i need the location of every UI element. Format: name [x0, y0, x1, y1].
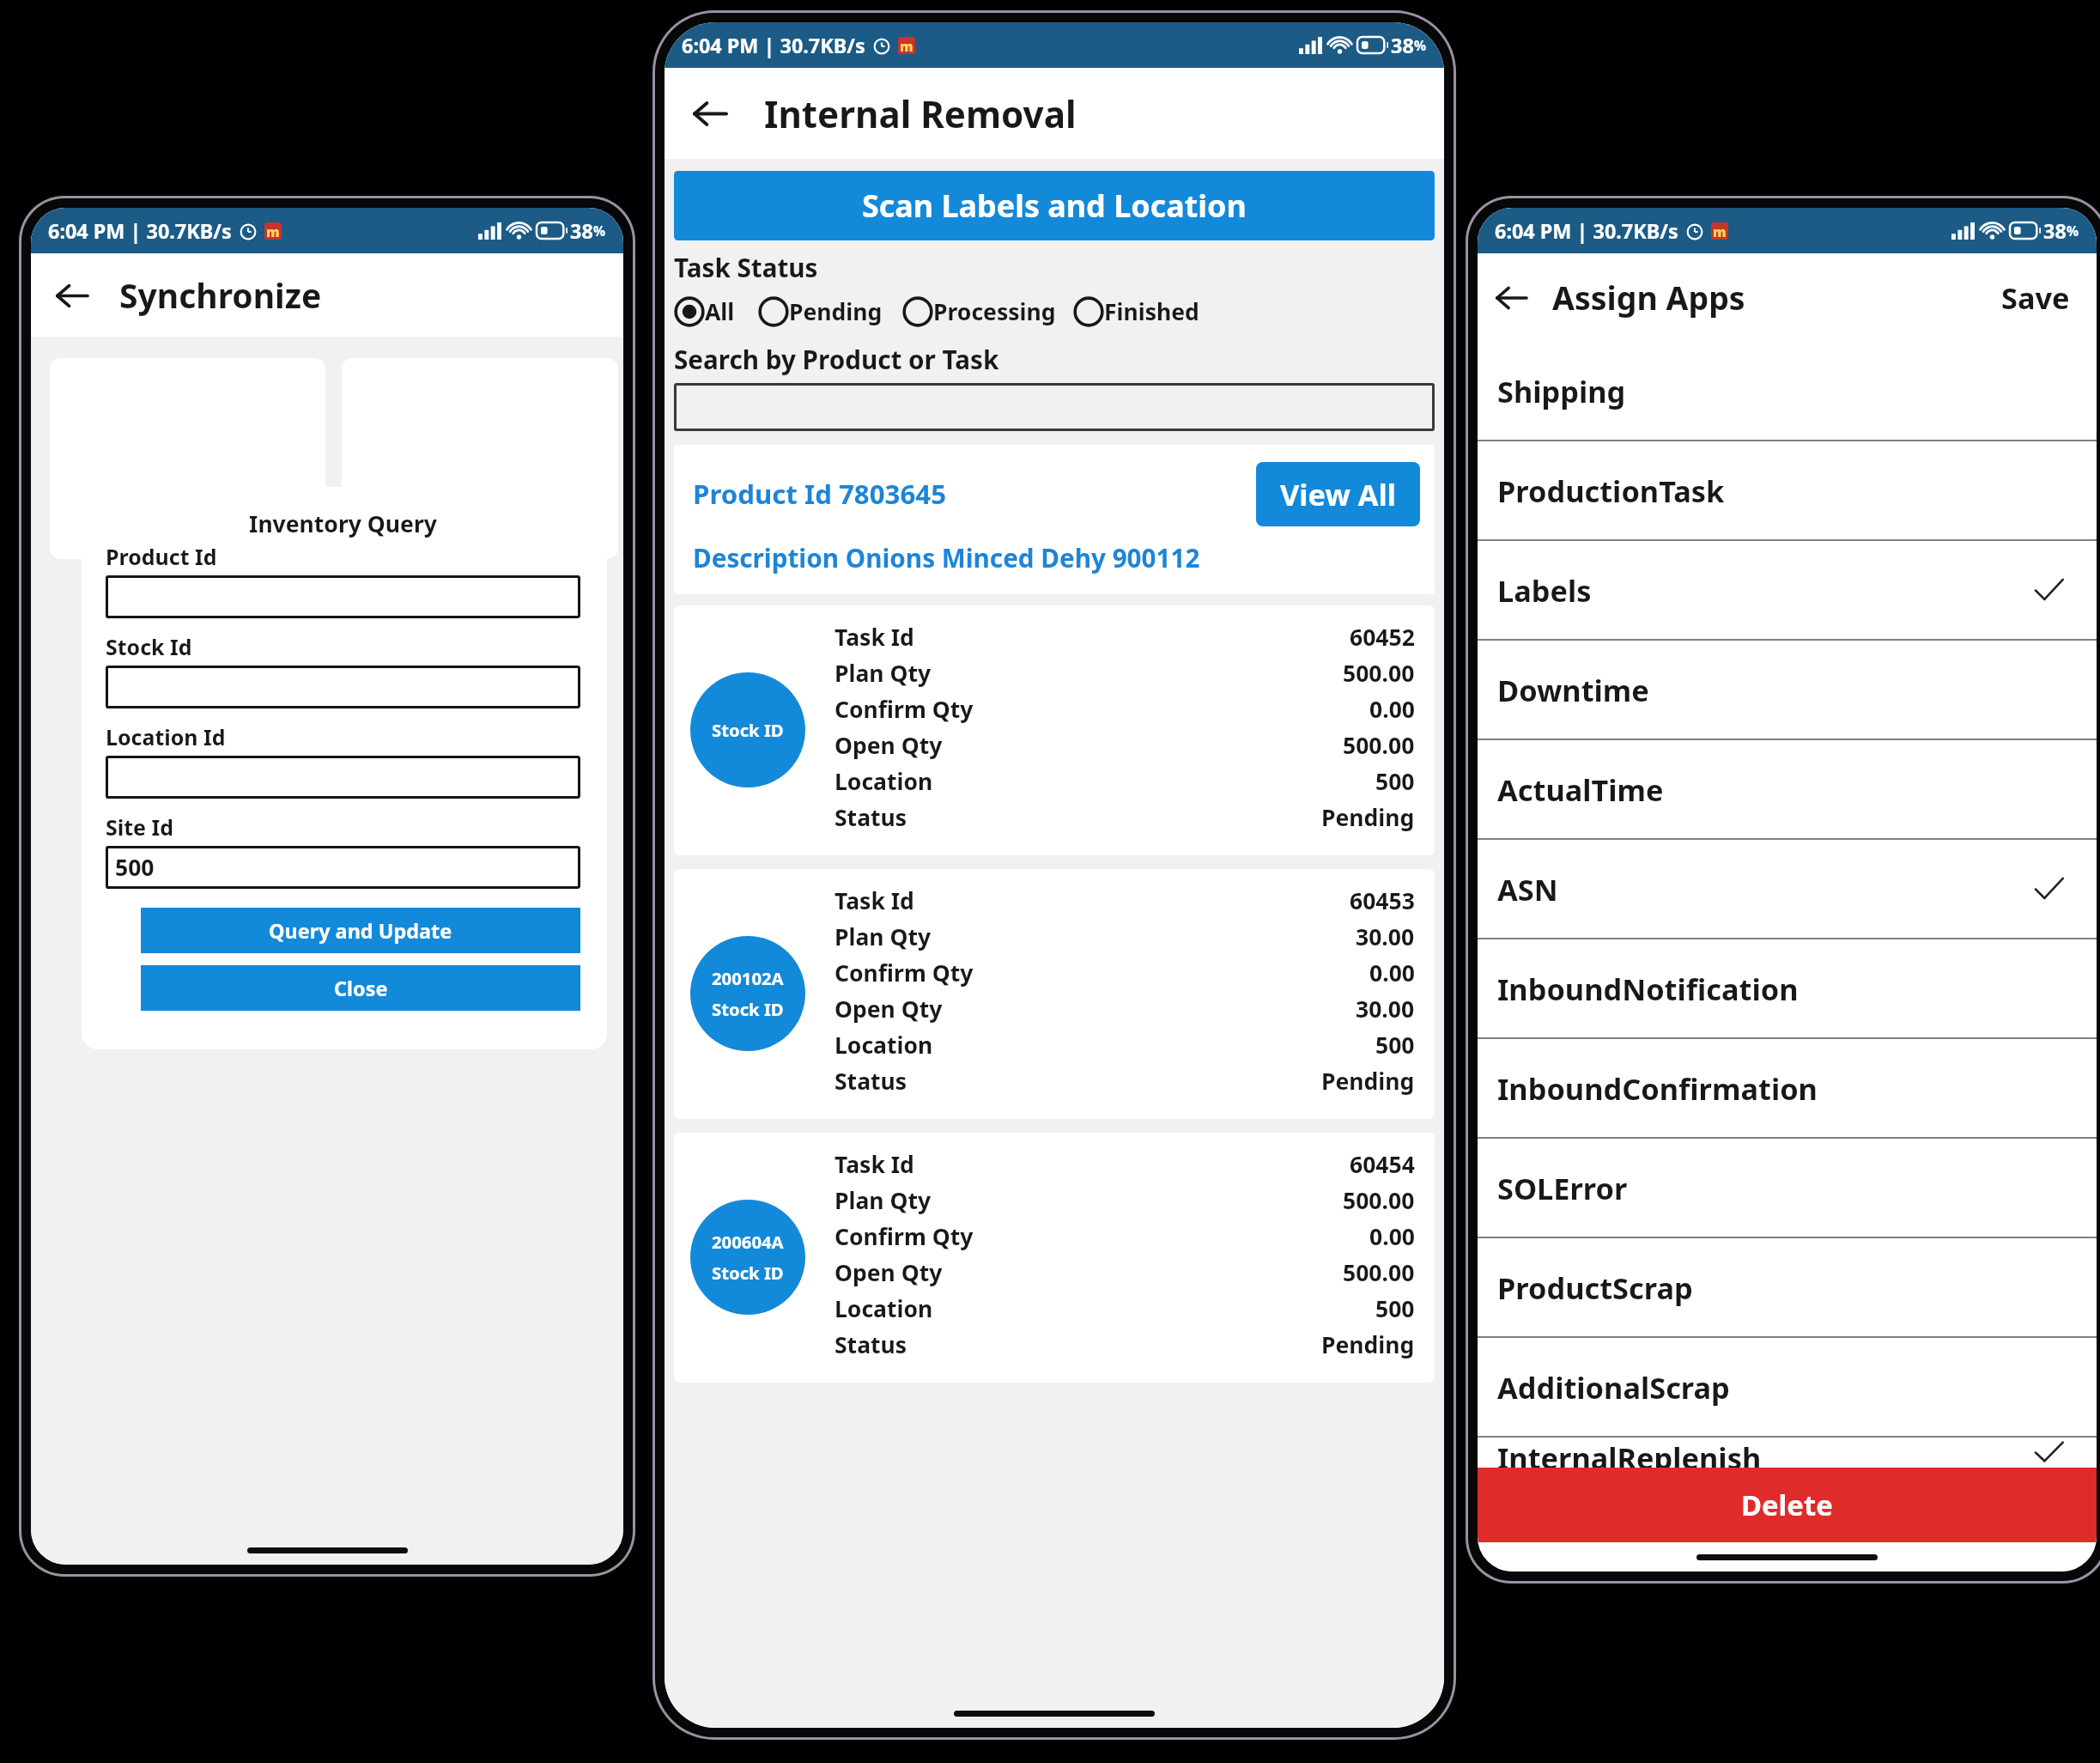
button[interactable]: Processing	[902, 296, 1056, 327]
staticText: Open Qty	[835, 1257, 943, 1288]
staticText: Search by Product or Task	[674, 342, 999, 376]
staticText: Task Id	[835, 885, 914, 916]
staticText: Task Status	[674, 250, 818, 284]
button[interactable]	[106, 756, 580, 799]
staticText: 0.00	[1369, 694, 1415, 725]
staticText: 60453	[1350, 885, 1415, 916]
staticText: 500.00	[1343, 1257, 1415, 1288]
staticText: Plan Qty	[835, 921, 932, 952]
button[interactable]	[342, 358, 618, 559]
button[interactable]: Close	[141, 965, 580, 1011]
staticText: All	[705, 296, 735, 327]
staticText: 500	[1375, 1030, 1415, 1061]
staticText: m	[900, 37, 913, 54]
staticText: Pending	[1321, 1329, 1415, 1360]
staticText: 500	[1375, 766, 1415, 797]
staticText: Confirm Qty	[835, 1221, 974, 1252]
staticText: Synchronize	[119, 272, 322, 318]
button[interactable]: Back	[1485, 272, 1536, 323]
staticText: 38	[2043, 217, 2067, 245]
button[interactable]	[106, 666, 580, 708]
button[interactable]	[50, 358, 325, 559]
staticText: Internal Removal	[764, 89, 1077, 138]
staticText: Pending	[789, 296, 883, 327]
staticText: 0.00	[1369, 1221, 1415, 1252]
staticText: 60452	[1350, 622, 1415, 653]
staticText: Task Id	[835, 1149, 914, 1180]
button[interactable]: All	[674, 296, 735, 327]
button[interactable]: Delete	[1478, 1468, 2097, 1542]
button[interactable]: ActualTime	[1478, 740, 2097, 840]
staticText: m	[266, 222, 280, 240]
staticText: 30.00	[1356, 994, 1415, 1024]
staticText: Location	[835, 1293, 933, 1324]
staticText: Downtime	[1497, 670, 1649, 710]
staticText: InboundConfirmation	[1497, 1068, 1818, 1109]
staticText: 500.00	[1343, 1185, 1415, 1216]
staticText: Finished	[1104, 296, 1199, 327]
button[interactable]: InboundConfirmation	[1478, 1039, 2097, 1139]
staticText: Labels	[1497, 570, 1592, 611]
button[interactable]: 200604A	[674, 1133, 1435, 1383]
staticText: Open Qty	[835, 730, 943, 761]
staticText: AdditionalScrap	[1497, 1367, 1730, 1407]
staticText: Processing	[933, 296, 1056, 327]
button[interactable]: Labels	[1478, 541, 2097, 641]
staticText: Save	[2001, 277, 2070, 318]
staticText: Plan Qty	[835, 1185, 932, 1216]
staticText: Stock ID	[712, 1261, 784, 1285]
button[interactable]: 200102A	[674, 869, 1435, 1119]
button[interactable]: ASN	[1478, 840, 2097, 939]
staticText: Shipping	[1497, 371, 1626, 411]
staticText: Description Onions Minced Dehy 900112	[693, 540, 1200, 574]
staticText: 500	[1375, 1293, 1415, 1324]
staticText: ActualTime	[1497, 769, 1664, 810]
staticText: 200102A	[712, 966, 784, 990]
button[interactable]: 500	[106, 846, 580, 889]
button[interactable]: Scan Labels and Location	[674, 171, 1435, 240]
staticText: Close	[334, 975, 388, 1002]
staticText: Assign Apps	[1552, 276, 1745, 319]
button[interactable]: Pending	[758, 296, 883, 327]
button[interactable]: Stock ID	[674, 605, 1435, 855]
staticText: Pending	[1321, 802, 1415, 833]
staticText: %	[593, 222, 606, 240]
staticText: 6:04 PM | 30.7KB/s	[682, 32, 865, 59]
staticText: Status	[835, 1066, 907, 1097]
staticText: ProductionTask	[1497, 471, 1725, 511]
staticText: Stock Id	[106, 632, 192, 661]
staticText: Product Id	[106, 542, 217, 571]
button[interactable]: Shipping	[1478, 342, 2097, 441]
staticText: ProductScrap	[1497, 1268, 1693, 1308]
button[interactable]: AdditionalScrap	[1478, 1338, 2097, 1438]
staticText: Status	[835, 802, 907, 833]
button[interactable]: Downtime	[1478, 641, 2097, 740]
staticText: m	[1713, 222, 1727, 240]
staticText: Stock ID	[712, 997, 784, 1021]
staticText: Status	[835, 1329, 907, 1360]
staticText: Open Qty	[835, 994, 943, 1024]
button[interactable]: ProductionTask	[1478, 441, 2097, 541]
staticText: 6:04 PM | 30.7KB/s	[48, 217, 232, 245]
button[interactable]: Back	[45, 269, 98, 322]
button[interactable]	[674, 383, 1435, 431]
button[interactable]: SOLError	[1478, 1139, 2097, 1238]
button[interactable]: View All	[1256, 462, 1420, 526]
staticText: InboundNotification	[1497, 969, 1799, 1009]
button[interactable]: ProductScrap	[1478, 1238, 2097, 1338]
button[interactable]: InternalReplenish	[1478, 1438, 2097, 1468]
button[interactable]: Back	[681, 85, 737, 142]
staticText: 38	[1391, 32, 1414, 59]
staticText: Scan Labels and Location	[862, 185, 1247, 227]
staticText: 0.00	[1369, 957, 1415, 988]
staticText: Location	[835, 766, 933, 797]
staticText: Site Id	[106, 812, 173, 842]
staticText: %	[2067, 222, 2079, 240]
button[interactable]: Save	[1996, 272, 2075, 323]
button[interactable]: Finished	[1073, 296, 1199, 327]
button[interactable]: InboundNotification	[1478, 939, 2097, 1039]
button[interactable]: Query and Update	[141, 908, 580, 953]
staticText: Confirm Qty	[835, 694, 974, 725]
staticText: 6:04 PM | 30.7KB/s	[1495, 217, 1678, 245]
button[interactable]	[106, 575, 580, 618]
